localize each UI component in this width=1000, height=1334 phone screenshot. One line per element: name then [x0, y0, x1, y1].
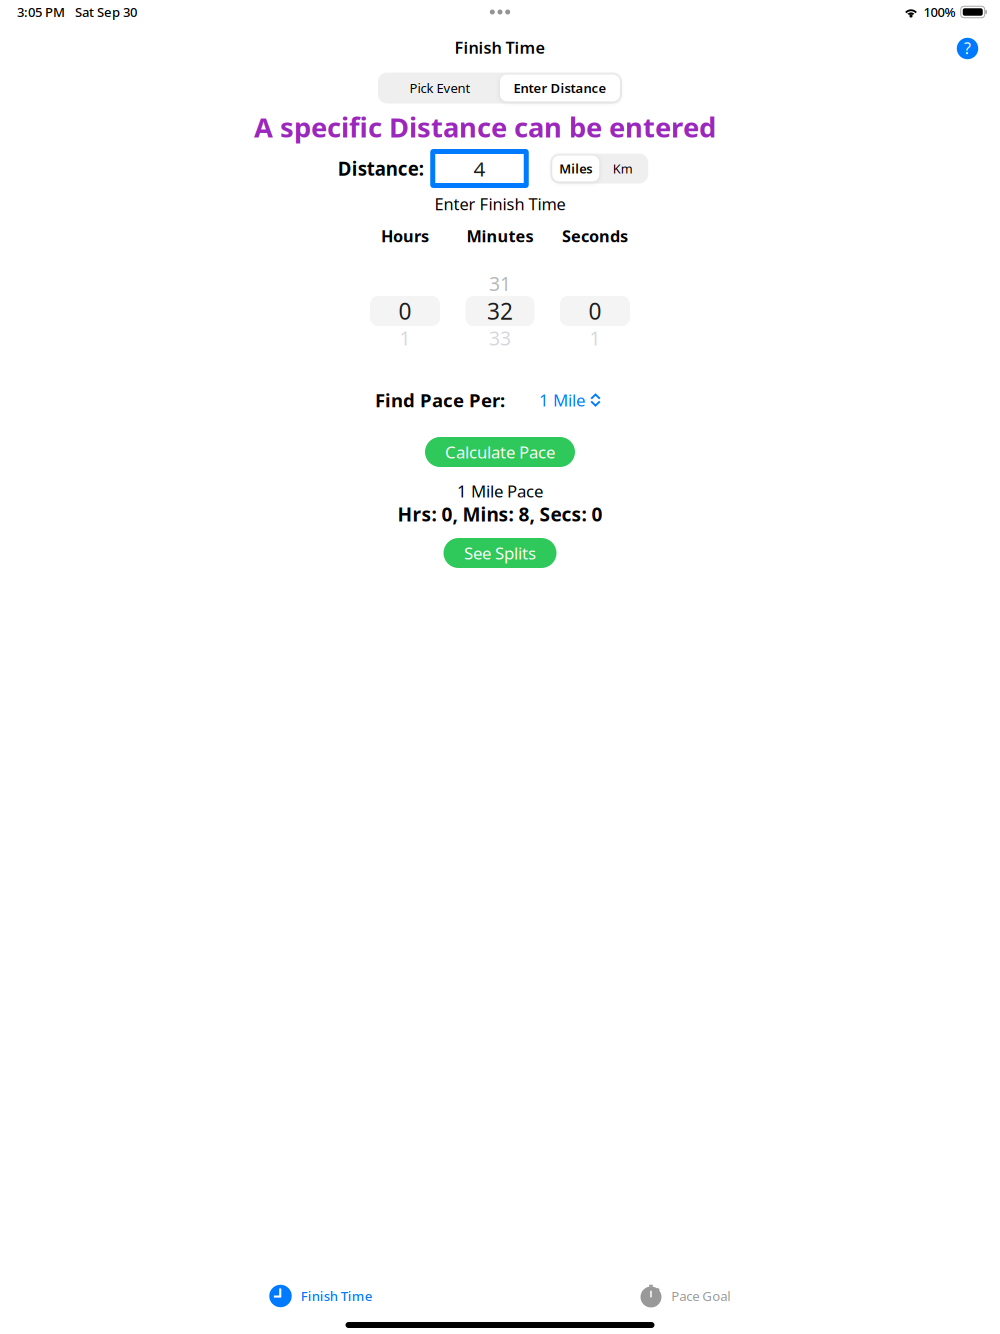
staticText: 32	[487, 296, 513, 326]
staticText: 0	[398, 296, 411, 326]
staticText: Hours	[381, 225, 429, 247]
staticText: Km	[613, 160, 633, 177]
staticText: 33	[489, 325, 511, 351]
button[interactable]	[357, 268, 452, 354]
staticText: 1	[589, 325, 600, 351]
button[interactable]: Calculate Pace	[425, 437, 575, 467]
staticText: 3:05 PM	[17, 3, 65, 21]
staticText: 1 Mile Pace	[457, 480, 543, 502]
staticText: Enter Finish Time	[434, 193, 565, 215]
button[interactable]: Pick Event	[380, 74, 500, 101]
staticText: Sat Sep 30	[75, 3, 137, 21]
button[interactable]: 4	[433, 151, 526, 185]
staticText: Pick Event	[409, 79, 470, 97]
button[interactable]: Pace Goal	[640, 1285, 730, 1307]
staticText: Distance:	[338, 156, 424, 181]
staticText: Find Pace Per:	[375, 387, 505, 413]
staticText: Enter Distance	[513, 79, 606, 97]
staticText: Finish Time	[454, 36, 545, 59]
staticText: ?	[964, 37, 971, 59]
button[interactable]: Enter Distance	[500, 74, 620, 101]
button[interactable]	[547, 268, 642, 354]
staticText: Miles	[559, 160, 592, 177]
button[interactable]: See Splits	[443, 538, 556, 568]
staticText: A specific Distance can be entered	[254, 108, 716, 146]
button[interactable]: Km	[599, 155, 646, 181]
button[interactable]: Finish Time	[269, 1285, 373, 1307]
button[interactable]: 1 Mile	[539, 389, 601, 411]
staticText: Minutes	[466, 225, 533, 247]
staticText: See Splits	[464, 542, 536, 564]
staticText: 4	[473, 154, 485, 182]
staticText: Hrs: 0, Mins: 8, Secs: 0	[397, 501, 602, 527]
button[interactable]: Help	[956, 37, 978, 59]
staticText: 0	[588, 296, 601, 326]
staticText: 100%	[923, 3, 955, 21]
staticText: 1 Mile	[539, 389, 585, 411]
staticText: Calculate Pace	[445, 441, 555, 463]
staticText: Finish Time	[301, 1287, 373, 1305]
button[interactable]: 31	[452, 268, 547, 354]
staticText: 31	[489, 270, 511, 297]
staticText: Pace Goal	[671, 1287, 730, 1305]
button[interactable]: Miles	[552, 155, 599, 181]
staticText: Seconds	[562, 225, 628, 247]
staticText: 1	[399, 325, 410, 351]
